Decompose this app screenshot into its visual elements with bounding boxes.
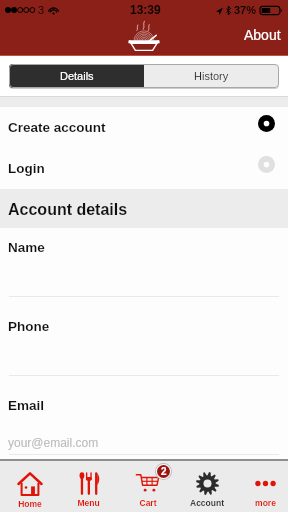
staticText: Login [8, 161, 45, 176]
staticText: Account details [8, 201, 128, 219]
button[interactable]: your@email.com [0, 426, 288, 454]
staticText: Menu [77, 498, 100, 507]
button[interactable]: About [232, 21, 288, 49]
staticText: Details [60, 70, 94, 82]
staticText: History [194, 70, 229, 82]
staticText: 3 [38, 4, 45, 16]
staticText: Email [8, 398, 45, 413]
staticText: About [244, 27, 281, 43]
staticText: Phone [8, 319, 50, 334]
staticText: Name [8, 240, 45, 255]
staticText: more [255, 498, 276, 507]
staticText: 37% [234, 4, 257, 16]
button[interactable]: Account [177, 461, 236, 512]
staticText: your@email.com [8, 436, 99, 449]
staticText: 2 [161, 466, 167, 477]
button[interactable]: History [144, 64, 279, 88]
button[interactable]: Home [0, 461, 59, 512]
button[interactable]: Menu [59, 461, 118, 512]
button[interactable]: Details [9, 64, 144, 88]
staticText: Home [18, 499, 42, 508]
staticText: Account [190, 498, 224, 507]
button[interactable]: Create account [0, 107, 288, 148]
staticText: 13:39 [130, 3, 161, 16]
button[interactable]: Home [128, 21, 160, 51]
button[interactable]: Login [0, 148, 288, 189]
button[interactable]: 2 [118, 461, 177, 512]
staticText: Create account [8, 120, 106, 135]
staticText: Cart [139, 498, 157, 507]
button[interactable]: more [236, 461, 288, 512]
